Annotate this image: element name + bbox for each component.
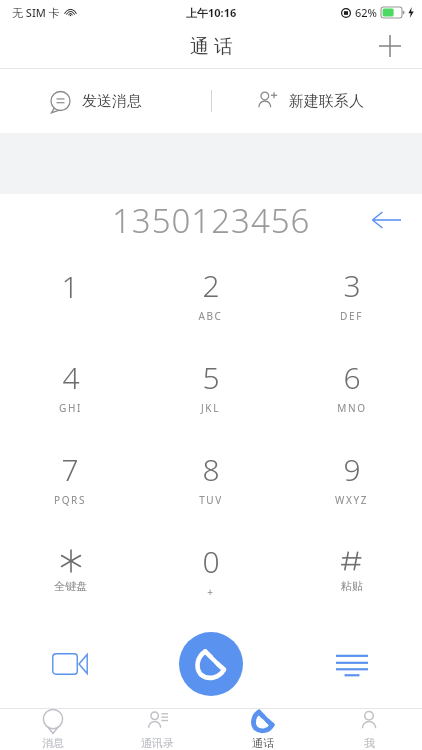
staticText: 粘贴 — [341, 579, 363, 593]
staticText: ABC — [198, 309, 223, 323]
button[interactable]: 全键盘 — [0, 528, 140, 620]
staticText: 消息 — [42, 736, 64, 750]
button[interactable]: Video call — [40, 634, 100, 694]
staticText: WXYZ — [335, 493, 368, 507]
button[interactable]: Call — [179, 632, 243, 696]
button[interactable]: 粘贴 — [281, 528, 422, 620]
button[interactable]: 3 — [281, 252, 422, 344]
staticText: 通讯录 — [141, 736, 174, 750]
staticText: DEF — [340, 309, 363, 323]
staticText: MNO — [337, 401, 367, 415]
staticText: TUV — [199, 493, 223, 507]
button[interactable]: 4 — [0, 344, 140, 436]
staticText: 通 话 — [190, 33, 233, 59]
button[interactable]: 1 — [0, 252, 140, 344]
staticText: 0 — [202, 541, 220, 582]
staticText: 全键盘 — [54, 579, 87, 593]
button[interactable]: 新建联系人 — [256, 90, 364, 112]
button[interactable]: 6 — [281, 344, 422, 436]
button[interactable]: Add — [372, 28, 408, 64]
button[interactable]: 我 — [316, 709, 422, 750]
staticText: 通话 — [252, 736, 274, 750]
button[interactable]: 2 — [140, 252, 281, 344]
staticText: 发送消息 — [82, 92, 142, 111]
staticText: 8 — [202, 449, 220, 490]
staticText: 7 — [61, 449, 79, 490]
staticText: 6 — [343, 357, 361, 398]
staticText: PQRS — [54, 493, 86, 507]
staticText: GHI — [59, 401, 82, 415]
staticText: 我 — [364, 736, 375, 750]
button[interactable]: 通话 — [210, 709, 316, 750]
staticText: 5 — [202, 357, 220, 398]
staticText: 1 — [61, 266, 79, 307]
staticText: + — [207, 585, 215, 599]
button[interactable]: 发送消息 — [50, 91, 142, 112]
staticText: 1350123456 — [112, 198, 311, 243]
staticText: 上午10:16 — [186, 5, 237, 20]
button[interactable]: 7 — [0, 436, 140, 528]
button[interactable]: 消息 — [0, 709, 105, 750]
staticText: 新建联系人 — [289, 92, 364, 111]
staticText: 9 — [343, 449, 361, 490]
staticText: JKL — [201, 401, 220, 415]
button[interactable]: Hide keypad — [322, 634, 382, 694]
button[interactable]: 0 — [140, 528, 281, 620]
staticText: 62% — [355, 5, 377, 20]
staticText: 无 SIM 卡 — [12, 5, 60, 20]
button[interactable]: 9 — [281, 436, 422, 528]
button[interactable]: 5 — [140, 344, 281, 436]
button[interactable]: 8 — [140, 436, 281, 528]
button[interactable]: Backspace — [362, 196, 410, 244]
staticText: 4 — [62, 357, 80, 398]
staticText: 3 — [343, 265, 361, 306]
button[interactable]: 通讯录 — [105, 709, 210, 750]
staticText: 2 — [202, 265, 220, 306]
